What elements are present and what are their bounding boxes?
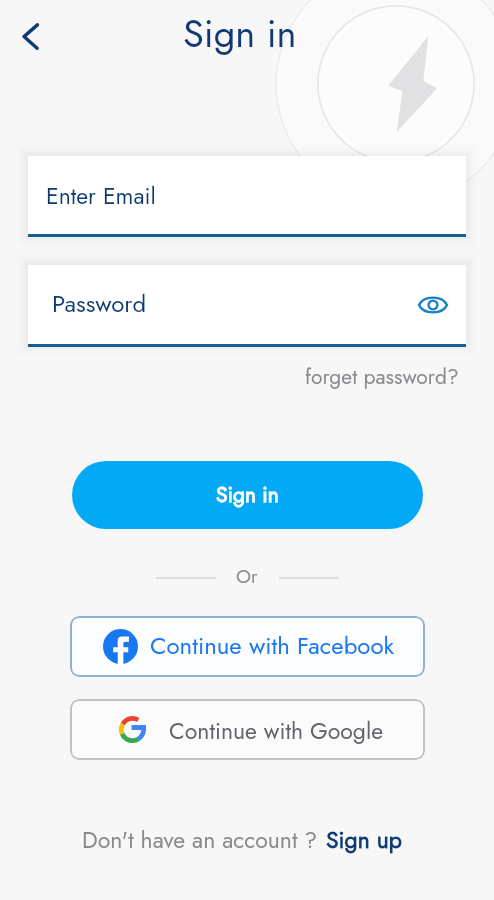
staticText: Or bbox=[236, 563, 258, 590]
staticText: Password bbox=[52, 286, 147, 321]
button[interactable]: forget password? bbox=[301, 360, 463, 394]
button[interactable]: Sign in bbox=[72, 461, 423, 529]
button[interactable]: Password bbox=[28, 265, 466, 344]
button[interactable]: Sign up bbox=[326, 823, 402, 856]
staticText: Sign in bbox=[183, 6, 297, 61]
button[interactable]: Continue with Google bbox=[70, 699, 425, 760]
staticText: Enter Email bbox=[46, 179, 156, 212]
staticText: Continue with Google bbox=[169, 714, 384, 747]
staticText: Sign in bbox=[216, 480, 279, 510]
button[interactable]: Show password bbox=[413, 285, 453, 325]
button[interactable]: Back bbox=[6, 13, 54, 61]
staticText: Don't have an account ? bbox=[82, 823, 318, 856]
button[interactable]: Continue with Facebook bbox=[70, 616, 425, 677]
staticText: Continue with Facebook bbox=[150, 628, 395, 663]
button[interactable]: Enter Email bbox=[28, 156, 466, 234]
staticText: forget password? bbox=[305, 362, 459, 392]
